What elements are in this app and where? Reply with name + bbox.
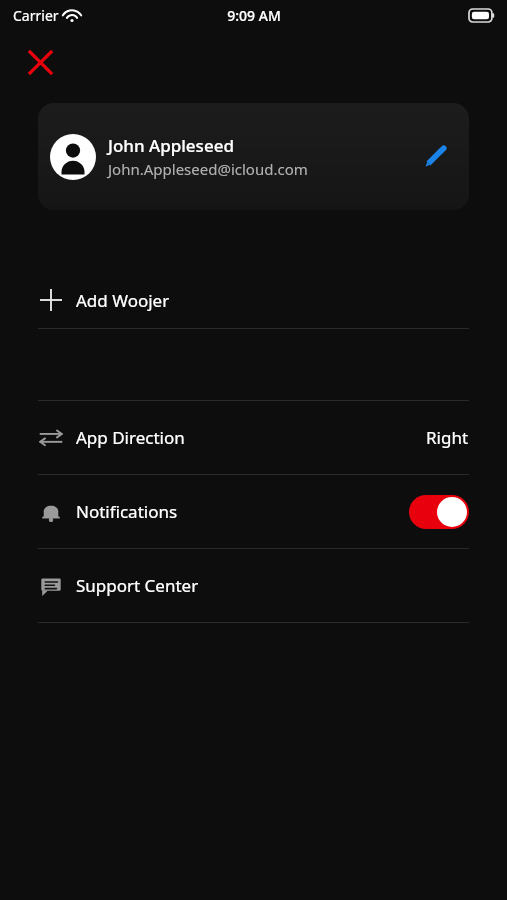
staticText: Add Woojer [76, 289, 469, 312]
button[interactable]: App Direction [0, 401, 507, 474]
button[interactable]: Support Center [0, 549, 507, 622]
button[interactable]: Edit profile [413, 135, 457, 179]
button[interactable]: Notifications [0, 475, 507, 548]
staticText: Support Center [76, 574, 469, 597]
staticText: App Direction [76, 426, 426, 449]
staticText: Notifications [76, 500, 409, 523]
staticText: John.Appleseed@icloud.com [108, 159, 308, 179]
button[interactable]: Notifications toggle, on [409, 495, 469, 529]
staticText: Right [426, 426, 469, 449]
staticText: 9:09 AM [227, 6, 281, 25]
staticText: John Appleseed [108, 134, 234, 157]
staticText: Carrier [13, 6, 59, 25]
button[interactable]: John Appleseed [38, 103, 469, 210]
button[interactable]: Close [14, 36, 66, 88]
button[interactable]: Add Woojer [0, 272, 507, 328]
